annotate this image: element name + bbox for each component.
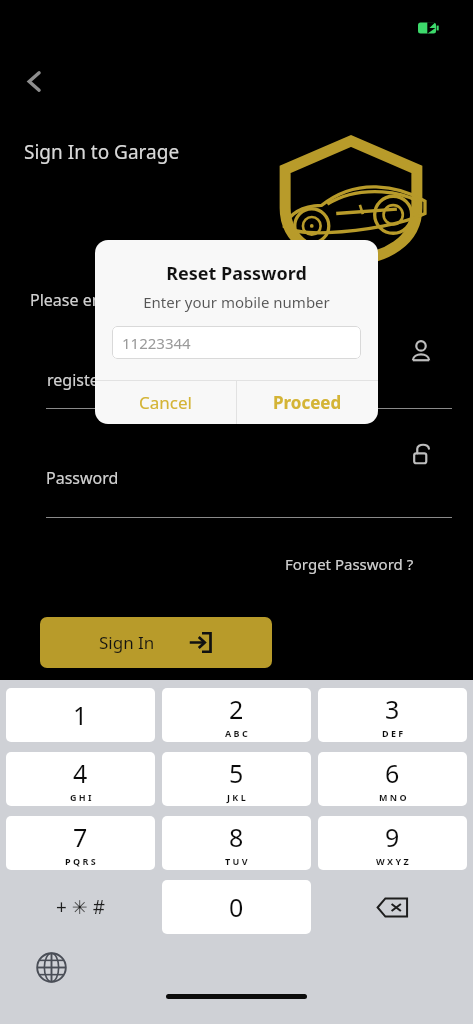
button[interactable]: Cancel — [95, 381, 236, 424]
button[interactable]: 7 — [6, 816, 155, 870]
staticText: 2 — [229, 692, 244, 726]
staticText: Please enter your — [30, 289, 162, 311]
staticText: Sign In — [99, 631, 155, 654]
staticText: registered mobile — [47, 369, 180, 391]
staticText: D E F — [382, 727, 404, 739]
staticText: Proceed — [273, 391, 342, 414]
button[interactable]: Sign In — [40, 617, 272, 668]
button[interactable]: 2 — [162, 688, 311, 742]
button[interactable]: Forget Password ? — [282, 551, 417, 577]
staticText: Forget Password ? — [285, 554, 414, 574]
staticText: W X Y Z — [376, 855, 409, 867]
staticText: 8 — [229, 820, 244, 854]
staticText: M N O — [379, 791, 407, 803]
button[interactable]: 5 — [162, 752, 311, 806]
button[interactable]: 9 — [318, 816, 467, 870]
button[interactable]: Symbols — [6, 880, 155, 934]
button[interactable]: 0 — [162, 880, 311, 934]
staticText: 3 — [385, 692, 400, 726]
button[interactable]: 8 — [162, 816, 311, 870]
button[interactable]: 4 — [6, 752, 155, 806]
staticText: Sign In to Garage — [24, 139, 180, 165]
staticText: Reset Password — [95, 261, 378, 286]
button[interactable]: 11223344 — [112, 326, 361, 359]
button[interactable]: Change keyboard language — [30, 946, 72, 988]
staticText: 0 — [229, 890, 244, 924]
staticText: J K L — [227, 791, 246, 803]
button[interactable]: Back — [12, 59, 56, 103]
staticText: Enter your mobile number — [95, 292, 378, 312]
staticText: Cancel — [139, 391, 192, 414]
staticText: 9 — [385, 820, 400, 854]
staticText: 5 — [229, 756, 244, 790]
button[interactable]: 6 — [318, 752, 467, 806]
staticText: Password — [46, 467, 119, 489]
staticText: 11223344 — [122, 333, 191, 353]
staticText: 7 — [73, 820, 88, 854]
button[interactable]: 3 — [318, 688, 467, 742]
staticText: 4 — [73, 756, 88, 790]
button[interactable]: Proceed — [237, 381, 378, 424]
staticText: T U V — [225, 855, 248, 867]
staticText: + ✳ # — [56, 894, 105, 920]
staticText: 1 — [73, 698, 88, 732]
staticText: A B C — [225, 727, 248, 739]
button[interactable]: Backspace — [318, 880, 467, 934]
staticText: 6 — [385, 756, 400, 790]
staticText: G H I — [70, 791, 92, 803]
staticText: P Q R S — [65, 855, 96, 867]
button[interactable]: 1 — [6, 688, 155, 742]
